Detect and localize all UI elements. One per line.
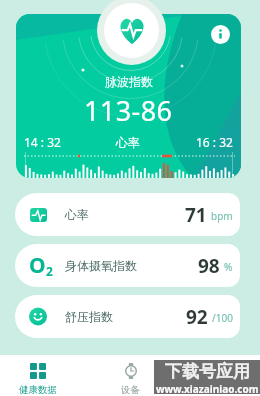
- button[interactable]: O: [15, 244, 240, 287]
- staticText: 16 : 32: [196, 134, 233, 150]
- staticText: 14 : 32: [24, 134, 61, 150]
- staticText: %: [224, 260, 233, 274]
- staticText: 心率: [65, 207, 89, 222]
- staticText: O: [29, 251, 46, 280]
- staticText: 98: [198, 253, 220, 279]
- button[interactable]: 舒压指数: [15, 295, 240, 338]
- button[interactable]: 我的: [190, 355, 254, 396]
- staticText: 113-86: [84, 92, 173, 129]
- button[interactable]: 设备: [98, 355, 162, 396]
- staticText: 设备: [121, 384, 140, 396]
- staticText: 脉波指数: [105, 74, 153, 89]
- staticText: 2: [46, 263, 47, 279]
- staticText: 舒压指数: [65, 309, 113, 324]
- button[interactable]: 健康数据: [6, 355, 70, 396]
- staticText: 身体摄氧指数: [65, 258, 137, 273]
- button[interactable]: Info: [211, 25, 230, 44]
- staticText: 我的: [213, 384, 232, 396]
- staticText: /100: [212, 311, 233, 325]
- staticText: 71: [185, 202, 207, 228]
- staticText: 心率: [116, 135, 140, 150]
- staticText: 健康数据: [19, 384, 57, 396]
- staticText: 92: [186, 304, 208, 330]
- staticText: bpm: [211, 209, 233, 223]
- button[interactable]: 心率: [15, 193, 240, 236]
- staticText: www.xiazainiao.com: [156, 382, 259, 394]
- staticText: 下载号应用: [165, 361, 250, 382]
